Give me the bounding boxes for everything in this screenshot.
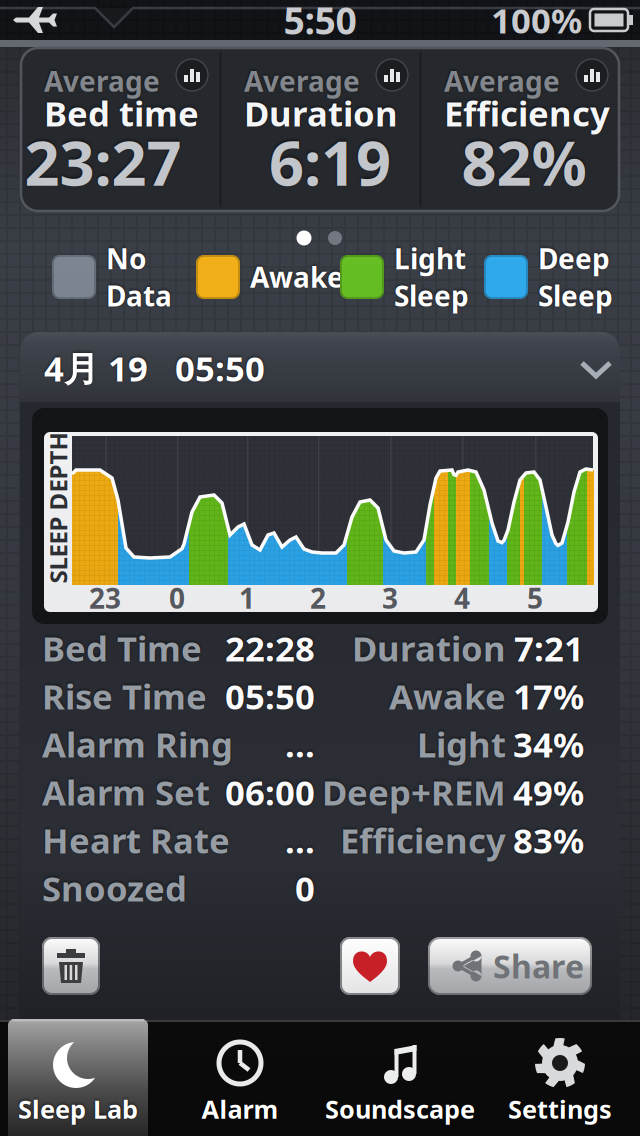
button[interactable]: Average [20,47,220,212]
staticText: Light Sleep [394,240,469,314]
button[interactable]: 4月 19 05:50 [20,332,620,400]
staticText: 2 [310,579,326,617]
staticText: 5:50 [283,0,356,45]
staticText: 06:00 [225,769,315,815]
staticText: Deep Sleep [538,240,613,314]
staticText: Deep+REM [322,769,506,815]
staticText: Sleep Lab [18,1092,138,1126]
button[interactable]: Delete [42,937,100,995]
staticText: Efficiency [444,90,610,136]
button[interactable]: Average [420,47,620,212]
staticText: 100% [491,0,582,43]
staticText: 83% [513,817,584,863]
staticText: Duration [244,90,398,136]
staticText: 3 [382,579,398,617]
staticText: 34% [513,721,584,767]
staticText: 0 [169,579,185,617]
staticText: 4 [454,579,470,617]
staticText: Bed Time [42,625,202,671]
staticText: 23 [89,579,121,617]
staticText: Efficiency [340,817,506,863]
staticText: Awake [389,673,506,719]
staticText: 05:50 [225,673,315,719]
button[interactable]: Settings [480,1019,640,1136]
button[interactable]: Favorite [340,937,400,995]
staticText: No Data [106,240,172,314]
button[interactable]: Share [428,937,592,995]
staticText: ... [285,817,315,863]
button[interactable]: Alarm [160,1019,320,1136]
staticText: Average [444,62,560,100]
staticText: 17% [513,673,584,719]
staticText: Average [244,62,360,100]
staticText: 49% [513,769,584,815]
staticText: Duration [352,625,506,671]
staticText: Average [44,62,160,100]
button[interactable]: Sleep Lab [8,1019,148,1136]
staticText: 23:27 [24,121,181,203]
staticText: Bed time [44,90,199,136]
button[interactable]: Average [220,47,420,212]
staticText: SLEEP DEPTH [0,492,133,524]
staticText: Awake [250,258,344,296]
staticText: 82% [461,121,586,203]
staticText: Rise Time [42,673,207,719]
staticText: 22:28 [225,625,315,671]
staticText: ... [285,721,315,767]
staticText: Soundscape [325,1092,475,1126]
staticText: Snoozed [42,865,187,911]
staticText: 6:19 [269,121,391,203]
staticText: 7:21 [514,625,584,671]
staticText: Alarm Ring [42,721,233,767]
staticText: Settings [508,1092,612,1126]
staticText: Alarm Set [42,769,210,815]
staticText: 4月 19 05:50 [44,345,265,391]
staticText: Share [493,945,584,987]
staticText: Alarm [201,1092,278,1126]
staticText: Heart Rate [42,817,230,863]
staticText: 0 [295,865,315,911]
staticText: 5 [527,579,543,617]
staticText: 1 [239,579,255,617]
staticText: Light [417,721,506,767]
button[interactable]: Soundscape [320,1019,480,1136]
